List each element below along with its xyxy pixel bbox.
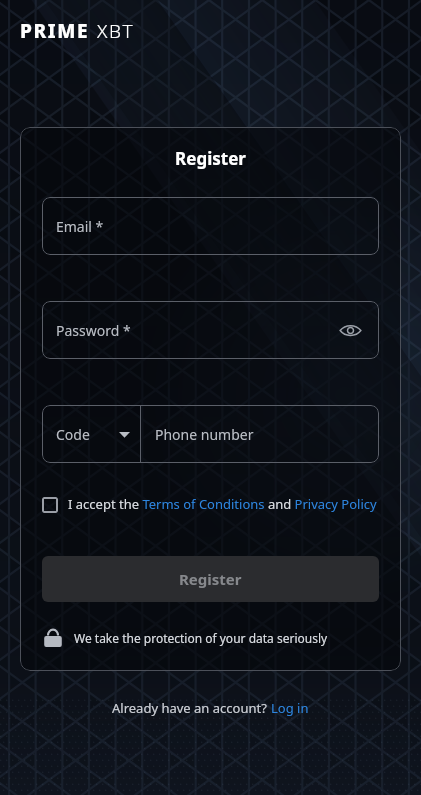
button[interactable]: Already have an account? xyxy=(112,699,309,717)
button[interactable]: Code xyxy=(42,405,140,463)
button[interactable]: Password * xyxy=(42,301,379,359)
staticText: Email * xyxy=(56,217,104,236)
button[interactable]: Register xyxy=(42,556,379,602)
staticText: I accept the Terms of Conditions and Pri… xyxy=(68,495,379,513)
staticText: Phone number xyxy=(155,425,254,444)
staticText: XBT xyxy=(97,18,135,44)
staticText: Register xyxy=(42,147,379,170)
button[interactable]: Phone number xyxy=(141,405,379,463)
staticText: Register xyxy=(179,569,242,589)
button[interactable]: Email * xyxy=(42,197,379,255)
button[interactable]: Show password xyxy=(335,315,365,345)
button[interactable]: Accept terms and conditions xyxy=(42,497,58,513)
button[interactable]: PRIME xyxy=(20,18,135,44)
staticText: Code xyxy=(56,425,90,444)
staticText: Log in xyxy=(271,699,309,717)
staticText: Password * xyxy=(56,321,131,340)
button[interactable]: Accept terms and conditions xyxy=(42,495,379,513)
staticText: Already have an account? xyxy=(112,699,271,717)
staticText: We take the protection of your data seri… xyxy=(74,630,328,646)
staticText: PRIME xyxy=(20,18,90,44)
